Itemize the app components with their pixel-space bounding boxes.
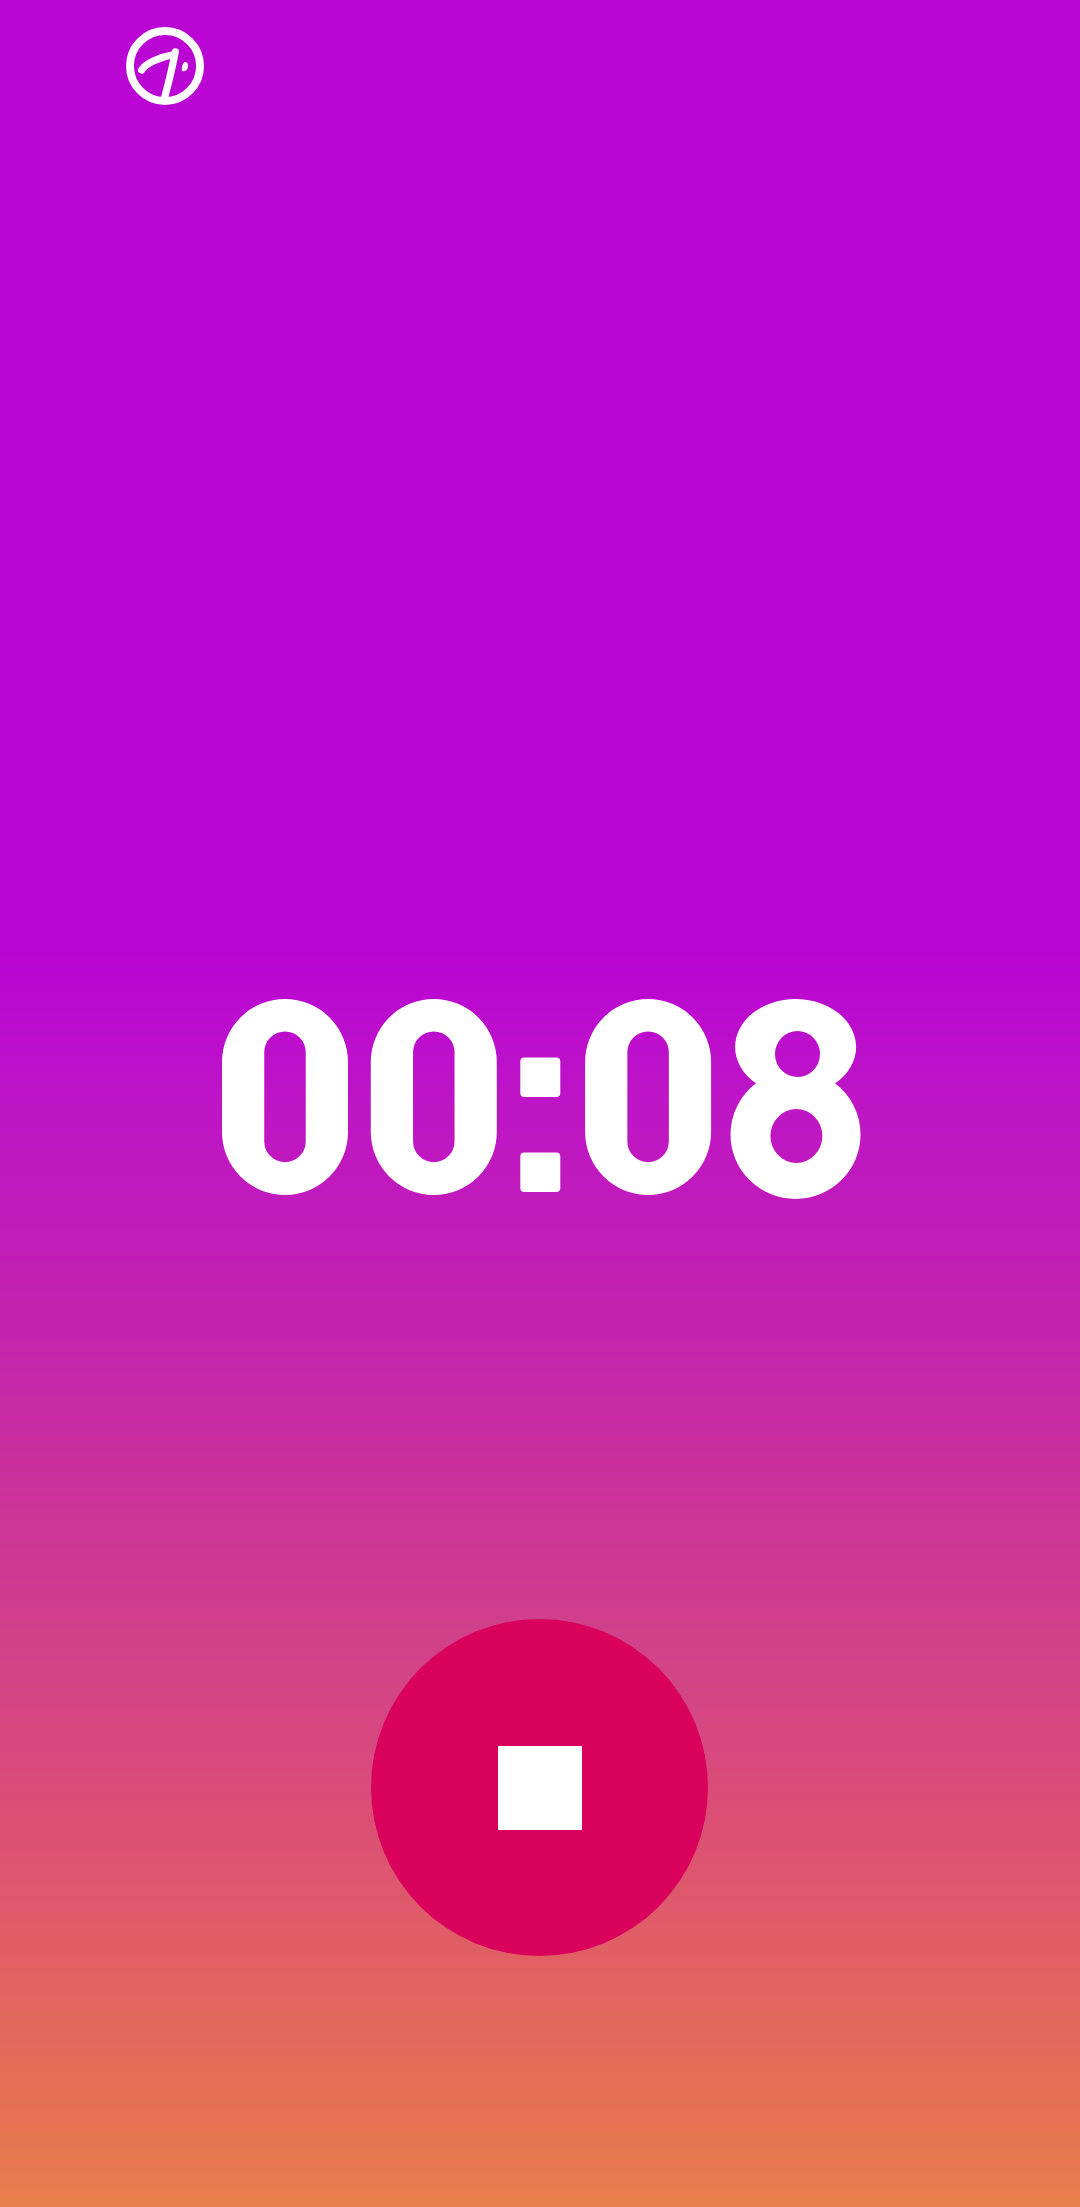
button[interactable]: App logo (126, 27, 204, 105)
button[interactable]: Stop (371, 1619, 708, 1956)
other: Elapsed time 00:08 (222, 999, 866, 1202)
